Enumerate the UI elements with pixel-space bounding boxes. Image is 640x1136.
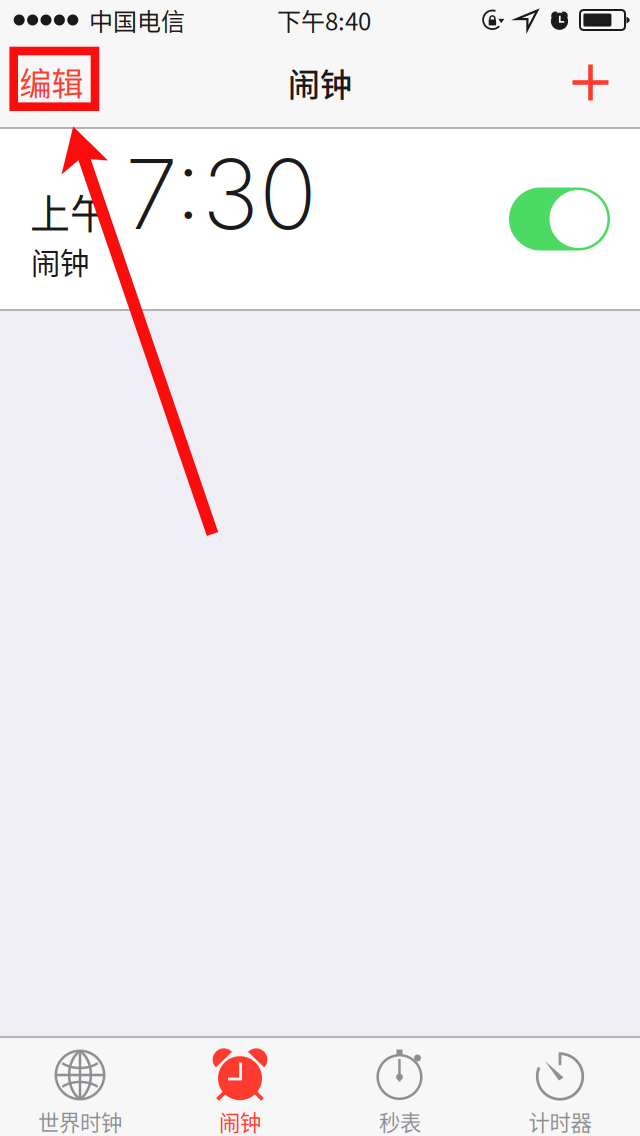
staticText: 编辑 xyxy=(19,58,83,105)
staticText: 中国电信 xyxy=(89,3,185,37)
button[interactable]: Add Alarm xyxy=(541,40,640,127)
staticText: 计时器 xyxy=(528,1106,591,1136)
button[interactable]: 世界时钟 xyxy=(0,1038,160,1136)
button[interactable]: 编辑 xyxy=(0,40,103,127)
staticText: 世界时钟 xyxy=(38,1106,122,1136)
staticText: 7:30 xyxy=(125,136,317,252)
staticText: 闹钟 xyxy=(31,240,89,282)
button[interactable]: 计时器 xyxy=(480,1038,640,1136)
button[interactable]: 上午 xyxy=(0,129,640,309)
staticText: 闹钟 xyxy=(219,1106,261,1136)
staticText: 上午 xyxy=(30,182,110,240)
staticText: 秒表 xyxy=(379,1106,421,1136)
button[interactable]: 闹钟 xyxy=(160,1038,320,1136)
staticText: 闹钟 xyxy=(288,59,352,106)
staticText: 下午8:40 xyxy=(277,3,371,37)
button[interactable]: 秒表 xyxy=(320,1038,480,1136)
